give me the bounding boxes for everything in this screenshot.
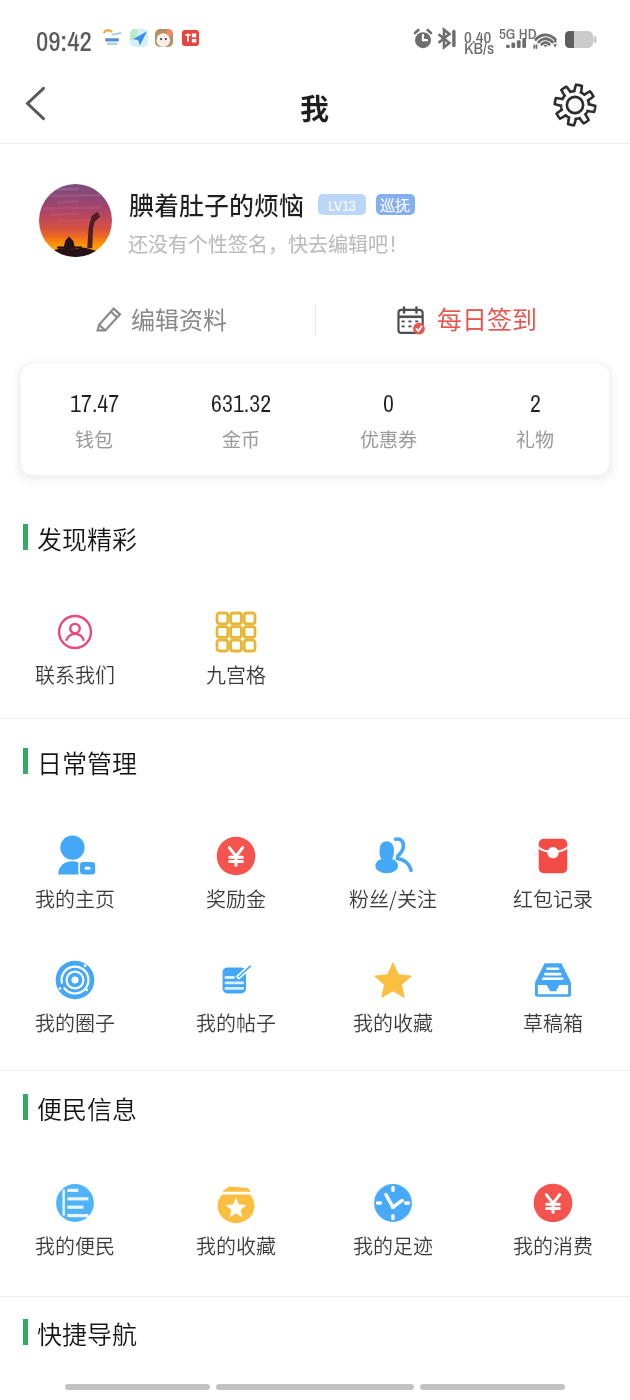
staticText: 奖励金	[206, 884, 266, 913]
button[interactable]: 我的帖子	[161, 950, 311, 1044]
staticText: 巡抚	[380, 194, 411, 215]
button[interactable]: 九宫格	[161, 602, 311, 696]
button[interactable]: 2	[462, 387, 609, 453]
staticText: 我的收藏	[353, 1008, 433, 1037]
staticText: 我的帖子	[196, 1008, 276, 1037]
staticText: 0	[383, 387, 394, 419]
staticText: LV13	[328, 195, 356, 215]
staticText: 09:42	[36, 23, 92, 59]
staticText: 联系我们	[35, 660, 115, 689]
staticText: 还没有个性签名，快去编辑吧！	[128, 229, 408, 258]
staticText: 九宫格	[206, 660, 266, 689]
staticText: 腆着肚子的烦恼	[129, 186, 305, 222]
button[interactable]: 红包记录	[478, 826, 628, 920]
staticText: 我的便民	[35, 1231, 115, 1260]
staticText: 17.47	[70, 387, 120, 419]
staticText: 金币	[222, 425, 261, 453]
staticText: 日常管理	[37, 744, 138, 780]
staticText: 5G HD	[499, 23, 537, 43]
button[interactable]: 草稿箱	[478, 950, 628, 1044]
staticText: 2	[530, 387, 541, 419]
staticText: 便民信息	[37, 1090, 138, 1126]
button[interactable]: 631.32	[168, 387, 315, 453]
staticText: 发现精彩	[37, 520, 138, 556]
button[interactable]: 编辑资料	[80, 296, 246, 344]
button[interactable]: 我的圈子	[0, 950, 150, 1044]
button[interactable]: 奖励金	[161, 826, 311, 920]
button[interactable]: 我的主页	[0, 826, 150, 920]
staticText: 我的主页	[35, 884, 115, 913]
button[interactable]: 我的收藏	[318, 950, 468, 1044]
button[interactable]: 联系我们	[0, 602, 150, 696]
staticText: 我	[300, 86, 330, 128]
staticText: 我的圈子	[35, 1008, 115, 1037]
button[interactable]: Back	[8, 76, 64, 132]
button[interactable]: 我的收藏	[161, 1173, 311, 1267]
staticText: 我的足迹	[353, 1231, 433, 1260]
button[interactable]: 17.47	[21, 364, 609, 475]
button[interactable]: Settings	[546, 76, 604, 134]
staticText: 红包记录	[513, 884, 593, 913]
button[interactable]: 我的足迹	[318, 1173, 468, 1267]
button[interactable]: 0	[315, 387, 462, 453]
staticText: 草稿箱	[523, 1008, 583, 1037]
staticText: 钱包	[75, 425, 114, 453]
button[interactable]: 粉丝/关注	[318, 826, 468, 920]
staticText: 0.40	[464, 25, 492, 48]
staticText: KB/s	[464, 36, 495, 59]
button[interactable]: 我的便民	[0, 1173, 150, 1267]
staticText: 粉丝/关注	[349, 884, 437, 913]
staticText: 编辑资料	[131, 301, 227, 336]
staticText: 631.32	[211, 387, 272, 419]
staticText: 快捷导航	[37, 1315, 138, 1351]
button[interactable]: 我的消费	[478, 1173, 628, 1267]
button[interactable]	[39, 184, 112, 257]
staticText: 礼物	[516, 425, 555, 453]
button[interactable]: 17.47	[21, 387, 168, 453]
staticText: 优惠券	[360, 425, 418, 453]
staticText: 我的消费	[513, 1231, 593, 1260]
staticText: 我的收藏	[196, 1231, 276, 1260]
button[interactable]: 每日签到	[386, 296, 552, 344]
staticText: 每日签到	[437, 300, 538, 336]
